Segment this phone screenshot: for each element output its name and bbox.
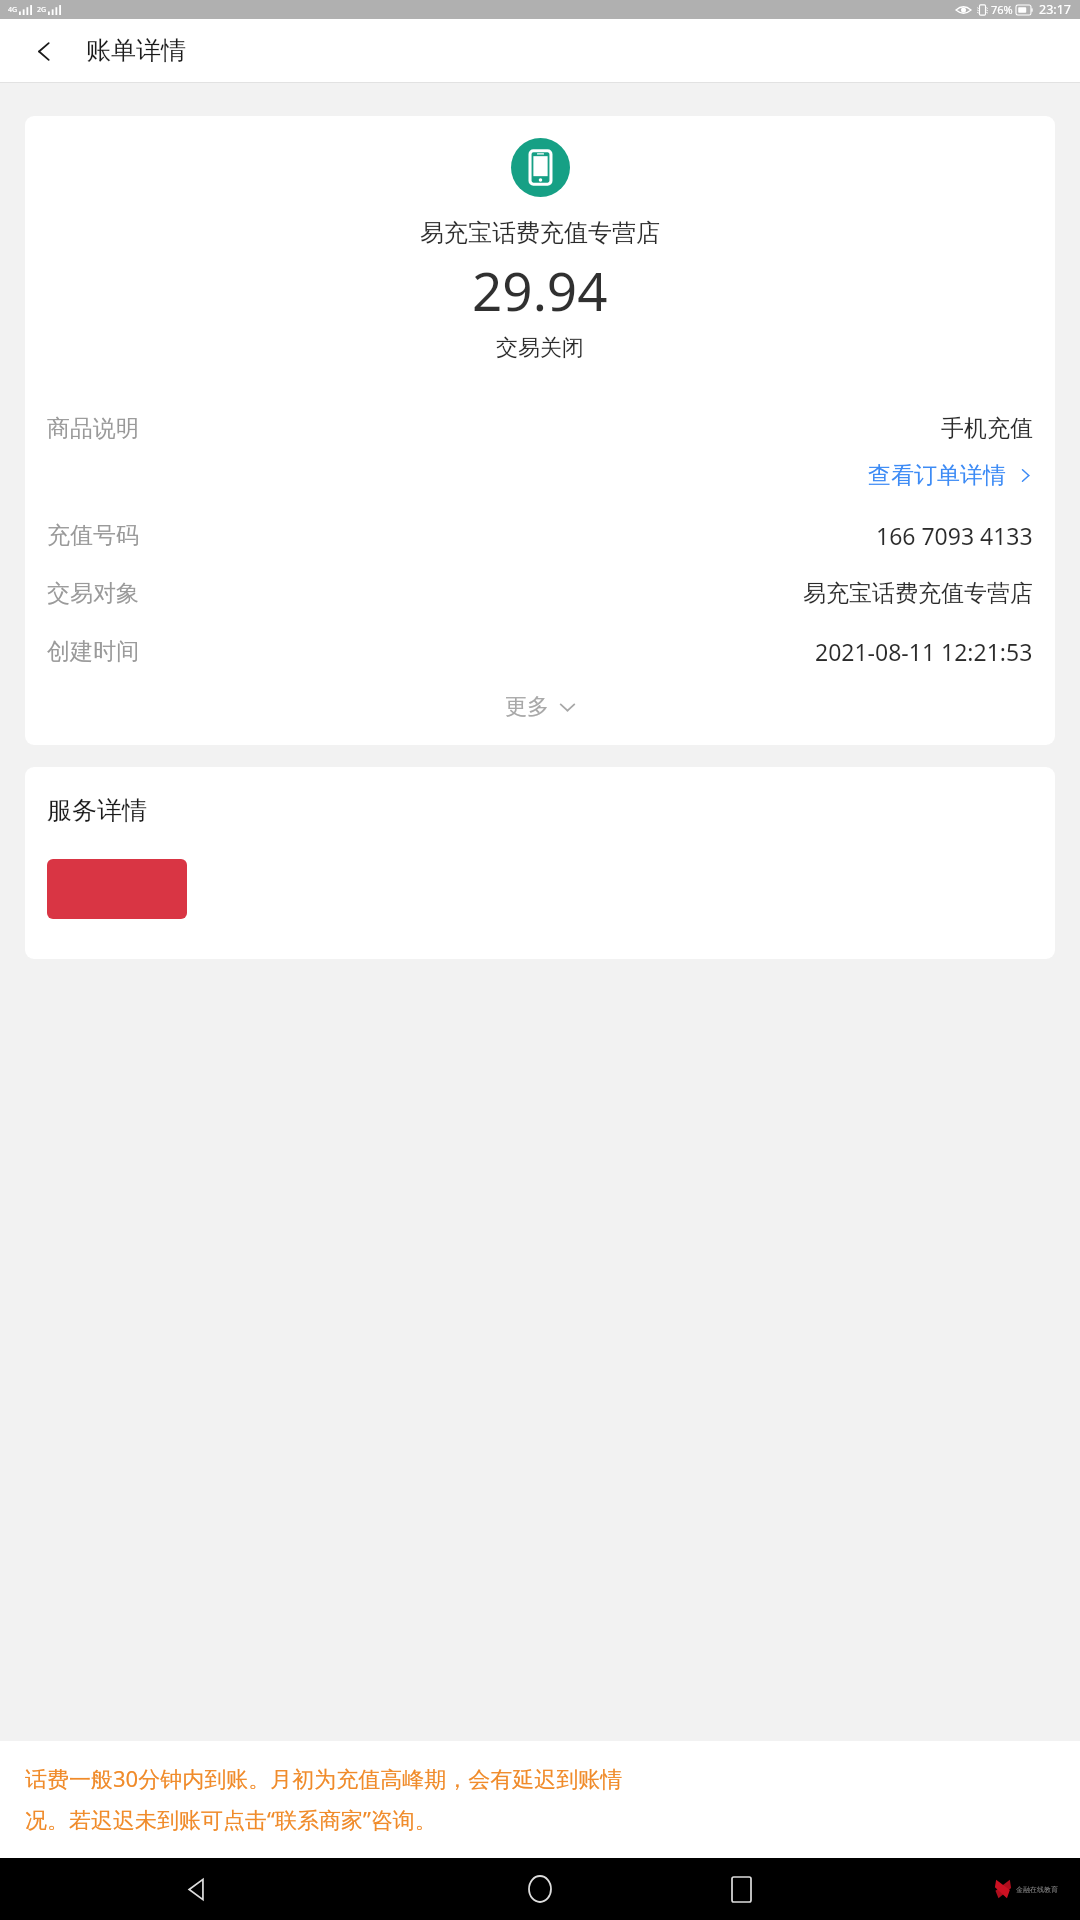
staticText: 2021-08-11 12:21:53: [815, 636, 1033, 667]
staticText: 充值号码: [47, 521, 139, 550]
button[interactable]: 商品说明: [47, 414, 1033, 443]
button[interactable]: Back: [167, 1860, 225, 1918]
button[interactable]: Back: [22, 29, 66, 73]
button[interactable]: Recents: [712, 1860, 770, 1918]
staticText: 交易对象: [47, 579, 139, 608]
staticText: 况。若迟迟未到账可点击“联系商家”咨询。: [25, 1804, 437, 1834]
staticText: 76%: [991, 2, 1013, 17]
button[interactable]: 充值号码: [47, 520, 1033, 551]
staticText: 2G: [37, 5, 47, 15]
button[interactable]: Home: [511, 1860, 569, 1918]
staticText: 易充宝话费充值专营店: [803, 579, 1033, 608]
staticText: 易充宝话费充值专营店: [420, 218, 660, 248]
staticText: 4G: [8, 5, 18, 15]
staticText: 交易关闭: [496, 334, 584, 362]
staticText: 商品说明: [47, 414, 139, 443]
staticText: 更多: [505, 693, 549, 721]
staticText: 账单详情: [86, 35, 186, 66]
staticText: 服务详情: [47, 795, 147, 826]
staticText: 23:17: [1039, 1, 1071, 18]
button[interactable]: 创建时间: [47, 636, 1033, 667]
staticText: 29.94: [472, 254, 608, 326]
staticText: 金融在线教育: [1016, 1885, 1058, 1894]
button[interactable]: 交易对象: [47, 579, 1033, 608]
staticText: 手机充值: [941, 414, 1033, 443]
staticText: 查看订单详情: [868, 461, 1006, 490]
button[interactable]: 更多: [25, 693, 1055, 721]
button[interactable]: 查看订单详情: [47, 461, 1033, 490]
staticText: 166 7093 4133: [876, 520, 1033, 551]
staticText: 话费一般30分钟内到账。月初为充值高峰期，会有延迟到账情: [25, 1763, 623, 1793]
staticText: 创建时间: [47, 637, 139, 666]
